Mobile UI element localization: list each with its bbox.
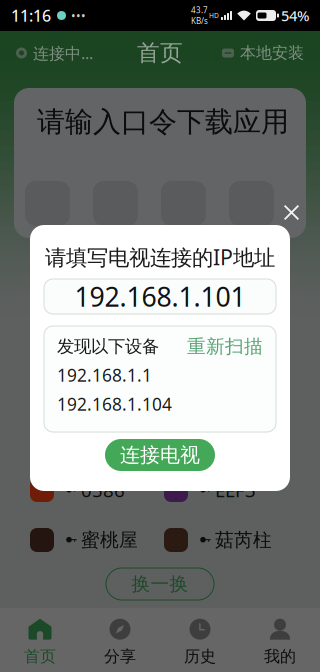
button[interactable]: 分享 <box>80 608 160 672</box>
button[interactable]: 换一换 <box>106 568 214 600</box>
button[interactable]: 历史 <box>160 608 240 672</box>
staticText: 43.7 <box>191 5 208 15</box>
button[interactable]: 192.168.1.104 <box>57 394 263 414</box>
staticText: 192.168.1.101 <box>74 279 245 314</box>
staticText: EEF3 <box>215 478 256 502</box>
button[interactable]: 重新扫描 <box>187 335 263 358</box>
staticText: HD <box>209 11 219 20</box>
button[interactable]: 菇芮柱 <box>164 526 290 554</box>
button[interactable]: 我的 <box>240 608 320 672</box>
staticText: 192.168.1.1 <box>57 363 152 386</box>
staticText: 菇芮柱 <box>215 528 272 551</box>
staticText: 连接中... <box>33 42 93 64</box>
staticText: 54% <box>281 6 309 25</box>
staticText: 换一换 <box>131 572 188 595</box>
staticText: 11:16 <box>11 5 51 26</box>
staticText: 首页 <box>137 39 183 67</box>
button[interactable]: 首页 <box>0 608 80 672</box>
button[interactable]: 本地安装 <box>216 35 310 71</box>
staticText: 0586 <box>81 478 125 502</box>
button[interactable]: 连接电视 <box>105 439 215 471</box>
button[interactable]: Close <box>279 200 304 225</box>
button[interactable]: 0586 <box>30 476 156 504</box>
staticText: 历史 <box>184 647 216 666</box>
staticText: 蜜桃屋 <box>81 528 138 551</box>
staticText: 发现以下设备 <box>57 336 159 357</box>
button[interactable]: EEF3 <box>164 476 290 504</box>
staticText: KB/s <box>191 15 208 26</box>
staticText: 192.168.1.104 <box>57 392 172 415</box>
staticText: 分享 <box>104 647 136 666</box>
staticText: 连接电视 <box>120 443 200 467</box>
staticText: ••• <box>71 7 86 23</box>
staticText: 重新扫描 <box>187 335 263 358</box>
staticText: 首页 <box>24 647 56 666</box>
staticText: 本地安装 <box>240 43 304 63</box>
staticText: 请输入口令下载应用 <box>37 105 289 139</box>
button[interactable]: 192.168.1.1 <box>57 365 263 385</box>
button[interactable]: 蜜桃屋 <box>30 526 156 554</box>
staticText: 我的 <box>264 647 296 666</box>
button[interactable]: 连接中... <box>10 34 99 72</box>
staticText: 请填写电视连接的IP地址 <box>45 243 275 271</box>
